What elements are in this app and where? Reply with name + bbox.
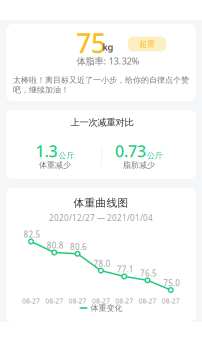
staticText: 0.73 <box>115 140 146 162</box>
staticText: 75.0 <box>163 278 180 288</box>
staticText: 公斤 <box>147 151 163 160</box>
staticText: 太棒啦！离目标又近了一小步，给你的自律点个赞吧，继续加油！ <box>13 75 189 95</box>
staticText: 体重减少 <box>39 160 71 170</box>
staticText: 77.1 <box>117 264 134 275</box>
staticText: 08-27 <box>69 297 87 305</box>
staticText: 08-27 <box>138 297 156 305</box>
staticText: 公斤 <box>58 151 74 160</box>
staticText: 80.8 <box>47 240 64 251</box>
staticText: 08-27 <box>115 297 133 305</box>
staticText: 08-27 <box>92 297 110 305</box>
staticText: 1.3 <box>35 140 57 162</box>
staticText: 82.5 <box>23 229 40 240</box>
staticText: 超重 <box>139 39 155 49</box>
staticText: kg <box>102 41 113 53</box>
staticText: 08-27 <box>45 297 63 305</box>
staticText: 80.6 <box>70 241 87 252</box>
staticText: 体重变化 <box>90 303 122 313</box>
staticText: 08-27 <box>162 297 180 305</box>
staticText: 75 <box>76 25 106 61</box>
staticText: 脂肪减少 <box>123 160 155 170</box>
staticText: 上一次减重对比 <box>70 117 133 128</box>
staticText: 08-27 <box>22 297 40 305</box>
staticText: 76.5 <box>140 268 157 279</box>
staticText: 体重曲线图 <box>73 196 128 209</box>
staticText: 体脂率: 13.32% <box>76 55 139 67</box>
staticText: 2020/12/27 — 2021/01/04 <box>49 213 153 223</box>
staticText: 78.0 <box>93 258 110 269</box>
